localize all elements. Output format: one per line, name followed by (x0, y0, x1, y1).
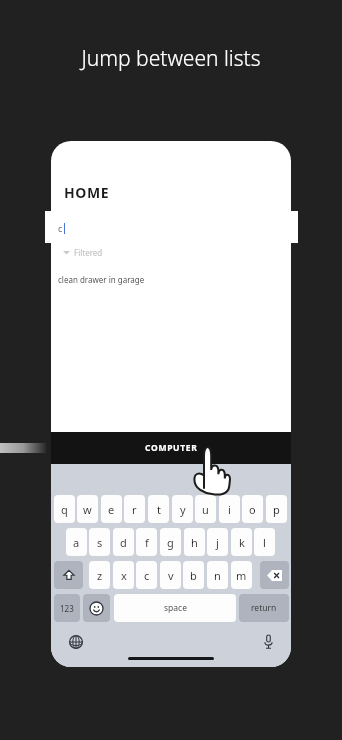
staticText: 123 (60, 603, 74, 614)
staticText: Filtered (74, 247, 103, 258)
button[interactable]: n (207, 561, 228, 589)
staticText: a (73, 535, 80, 550)
button[interactable]: b (183, 561, 204, 589)
staticText: b (190, 568, 197, 583)
button[interactable]: f (136, 528, 157, 556)
staticText: w (83, 502, 92, 517)
button[interactable]: z (89, 561, 110, 589)
staticText: g (167, 535, 174, 550)
staticText: u (202, 502, 209, 517)
staticText: d (120, 535, 127, 550)
button[interactable]: Backspace (260, 561, 289, 589)
staticText: c (58, 222, 63, 234)
staticText: clean drawer in garage (58, 274, 145, 285)
staticText: k (239, 535, 245, 550)
staticText: h (191, 535, 198, 550)
staticText: z (97, 568, 103, 583)
staticText: q (61, 502, 68, 517)
button[interactable]: v (160, 561, 181, 589)
staticText: COMPUTER (145, 442, 198, 454)
button[interactable]: t (148, 495, 169, 523)
button[interactable]: Voice input (258, 632, 278, 652)
staticText: m (236, 568, 247, 583)
staticText: Jump between lists (81, 44, 261, 73)
button[interactable]: p (266, 495, 287, 523)
button[interactable]: h (184, 528, 205, 556)
staticText: return (251, 602, 277, 614)
staticText: HOME (64, 183, 110, 202)
staticText: space (164, 602, 187, 614)
button[interactable]: Shift (54, 561, 83, 589)
button[interactable]: g (160, 528, 181, 556)
button[interactable]: Change keyboard (66, 632, 86, 652)
button[interactable]: c (136, 561, 157, 589)
button[interactable]: u (195, 495, 216, 523)
button[interactable]: COMPUTER (51, 432, 291, 464)
button[interactable]: o (242, 495, 263, 523)
button[interactable]: l (254, 528, 275, 556)
button[interactable]: y (172, 495, 193, 523)
staticText: y (180, 502, 186, 517)
button[interactable]: q (54, 495, 75, 523)
staticText: s (97, 535, 103, 550)
staticText: x (121, 568, 127, 583)
button[interactable]: j (207, 528, 228, 556)
button[interactable]: c (45, 211, 298, 243)
button[interactable]: return (239, 594, 289, 622)
staticText: e (108, 502, 115, 517)
button[interactable]: space (114, 594, 236, 622)
button[interactable]: k (231, 528, 252, 556)
button[interactable]: w (77, 495, 98, 523)
button[interactable]: a (66, 528, 87, 556)
button[interactable]: 123 (54, 594, 80, 622)
staticText: l (263, 535, 266, 550)
staticText: o (249, 502, 256, 517)
button[interactable]: s (89, 528, 110, 556)
staticText: p (273, 502, 280, 517)
button[interactable]: d (113, 528, 134, 556)
button[interactable]: i (219, 495, 240, 523)
button[interactable]: Emoji (83, 594, 110, 622)
button[interactable]: e (101, 495, 122, 523)
button[interactable]: m (231, 561, 252, 589)
staticText: v (168, 568, 174, 583)
staticText: n (214, 568, 221, 583)
staticText: j (216, 535, 219, 550)
staticText: i (228, 502, 231, 517)
staticText: f (145, 535, 149, 550)
staticText: c (144, 568, 150, 583)
staticText: t (157, 502, 161, 517)
button[interactable]: r (124, 495, 145, 523)
staticText: r (132, 502, 137, 517)
button[interactable]: x (113, 561, 134, 589)
